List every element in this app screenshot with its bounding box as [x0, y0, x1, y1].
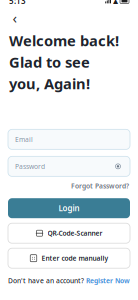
- staticText: Enter code manually: [41, 254, 108, 263]
- staticText: Login: [58, 203, 79, 213]
- button[interactable]: QR-Code-Scanner: [8, 223, 130, 243]
- staticText: 5:13: [9, 0, 26, 6]
- staticText: ‹: [12, 8, 17, 28]
- staticText: Email: [15, 135, 33, 144]
- staticText: Welcome back! Glad to see you, Again!: [9, 31, 119, 93]
- button[interactable]: Login: [8, 198, 130, 218]
- staticText: Forgot Password?: [71, 181, 129, 190]
- button[interactable]: Register Now: [86, 276, 130, 285]
- button[interactable]: Back: [8, 11, 22, 25]
- staticText: Register Now: [86, 276, 130, 285]
- staticText: Don't have an account?: [8, 276, 84, 285]
- button[interactable]: Show password: [113, 161, 123, 171]
- staticText: Password: [15, 162, 45, 171]
- staticText: QR-Code-Scanner: [47, 229, 102, 238]
- button[interactable]: Enter code manually: [8, 248, 130, 268]
- button[interactable]: Forgot Password?: [71, 181, 129, 190]
- staticText: ▲: [113, 0, 118, 5]
